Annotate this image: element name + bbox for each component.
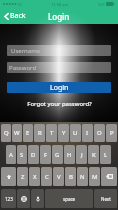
staticText: R — [38, 129, 42, 137]
staticText: S — [20, 151, 24, 159]
button[interactable]: V — [53, 167, 64, 186]
staticText: 11:58 am — [51, 2, 69, 7]
staticText: J — [81, 151, 83, 159]
button[interactable]: G — [52, 145, 63, 164]
button[interactable]: Dictation — [31, 189, 44, 208]
button[interactable]: Y — [58, 124, 69, 142]
staticText: EE — [18, 2, 22, 7]
staticText: U — [73, 129, 78, 137]
button[interactable]: Back — [3, 9, 27, 23]
staticText: N — [80, 173, 85, 181]
button[interactable]: D — [28, 145, 39, 164]
staticText: Login — [50, 83, 69, 93]
staticText: Next — [101, 196, 111, 202]
staticText: X — [33, 173, 37, 181]
button[interactable]: R — [34, 124, 45, 142]
button[interactable]: Next — [94, 189, 117, 208]
button[interactable]: X — [29, 167, 40, 186]
button[interactable]: J — [76, 145, 87, 164]
staticText: Username — [11, 47, 41, 55]
button[interactable]: U — [70, 124, 81, 142]
button[interactable]: E — [23, 124, 33, 142]
button[interactable]: 123 — [1, 189, 16, 208]
staticText: C — [45, 173, 49, 181]
staticText: 123 — [5, 196, 13, 202]
button[interactable]: Forgot your password? — [7, 100, 111, 108]
staticText: P — [110, 129, 114, 137]
staticText: Q — [4, 129, 9, 137]
button[interactable]: T — [46, 124, 57, 142]
button[interactable]: L — [100, 145, 111, 164]
staticText: Z — [21, 173, 25, 181]
staticText: E — [26, 129, 30, 137]
staticText: A — [9, 151, 13, 159]
staticText: H — [67, 151, 72, 159]
button[interactable]: Z — [17, 167, 28, 186]
staticText: Password — [9, 64, 37, 72]
button[interactable]: I — [82, 124, 93, 142]
staticText: Login — [48, 11, 70, 22]
button[interactable]: Username — [7, 45, 111, 56]
button[interactable]: N — [77, 167, 88, 186]
staticText: Forgot your password? — [27, 100, 92, 108]
button[interactable]: Login — [7, 82, 111, 93]
button[interactable]: Shift — [1, 167, 16, 186]
staticText: W — [14, 129, 20, 137]
button[interactable]: Delete — [101, 167, 117, 186]
button[interactable]: space — [45, 189, 93, 208]
staticText: Y — [62, 129, 66, 137]
button[interactable]: Emoji — [17, 189, 30, 208]
staticText: T — [50, 129, 54, 137]
staticText: G — [55, 151, 60, 159]
staticText: V — [57, 173, 61, 181]
button[interactable]: Password — [7, 62, 111, 73]
button[interactable]: C — [41, 167, 52, 186]
button[interactable]: W — [12, 124, 22, 142]
staticText: Back — [10, 11, 26, 21]
staticText: M — [92, 173, 98, 181]
staticText: space — [63, 196, 76, 202]
staticText: I — [86, 129, 89, 137]
button[interactable]: M — [89, 167, 100, 186]
button[interactable]: Q — [1, 124, 11, 142]
button[interactable]: S — [17, 145, 27, 164]
staticText: L — [104, 151, 108, 159]
button[interactable]: P — [106, 124, 117, 142]
staticText: K — [92, 151, 96, 159]
staticText: D — [31, 151, 36, 159]
button[interactable]: B — [65, 167, 76, 186]
staticText: B — [69, 173, 73, 181]
staticText: 92% — [98, 2, 105, 7]
button[interactable]: O — [94, 124, 105, 142]
staticText: O — [97, 129, 102, 137]
button[interactable]: K — [88, 145, 99, 164]
button[interactable]: F — [40, 145, 51, 164]
staticText: F — [44, 151, 48, 159]
button[interactable]: A — [6, 145, 16, 164]
button[interactable]: H — [64, 145, 75, 164]
